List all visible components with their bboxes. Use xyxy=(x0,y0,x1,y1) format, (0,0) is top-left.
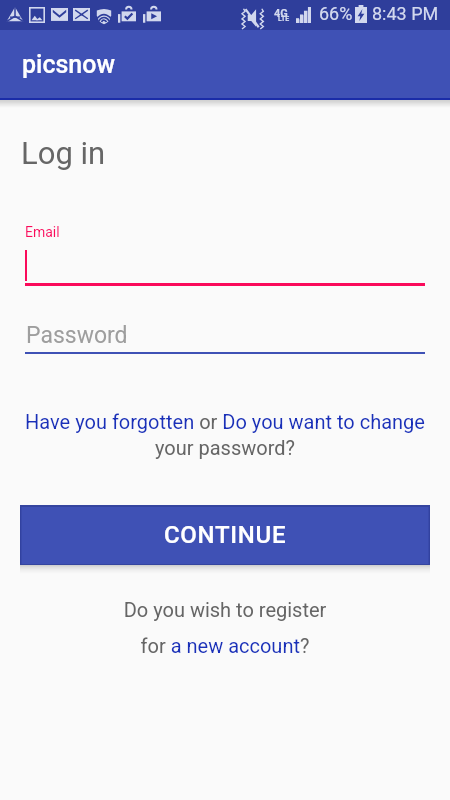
staticText: 8:43 PM xyxy=(372,3,439,24)
staticText: CONTINUE xyxy=(164,521,287,549)
staticText: LTE xyxy=(278,15,290,23)
staticText: Email xyxy=(25,224,60,240)
button[interactable]: CONTINUE xyxy=(20,505,430,565)
button[interactable]: for a new account? xyxy=(0,634,450,657)
staticText: picsnow xyxy=(22,50,115,79)
staticText: 4G xyxy=(274,7,288,20)
button[interactable]: picsnow xyxy=(0,30,450,99)
button[interactable]: Do you wish to register xyxy=(0,598,450,621)
staticText: 66% xyxy=(319,3,353,24)
staticText: Log in xyxy=(21,135,106,171)
button[interactable]: Have you forgotten or Do you want to cha… xyxy=(24,410,426,460)
button[interactable]: Password xyxy=(25,319,425,358)
button[interactable] xyxy=(25,246,425,285)
staticText: Password xyxy=(26,322,128,349)
